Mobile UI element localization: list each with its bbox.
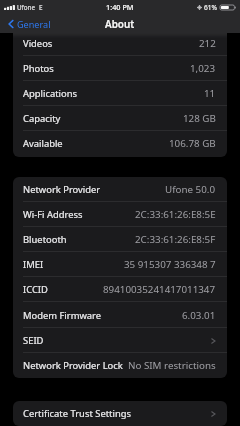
staticText: About bbox=[105, 17, 135, 30]
staticText: E bbox=[39, 3, 43, 12]
button[interactable]: Bluetooth bbox=[13, 227, 227, 252]
button[interactable]: Available bbox=[13, 131, 227, 156]
staticText: 6.03.01 bbox=[182, 309, 216, 322]
button[interactable]: Back to General bbox=[8, 14, 51, 33]
button[interactable]: IMEI bbox=[13, 252, 227, 277]
button[interactable]: Videos bbox=[13, 31, 227, 56]
staticText: 61% bbox=[204, 3, 218, 12]
staticText: 89410035241417011347 bbox=[103, 283, 216, 296]
staticText: 2C:33:61:26:E8:5E bbox=[135, 208, 216, 221]
staticText: Bluetooth bbox=[23, 233, 67, 246]
staticText: No SIM restrictions bbox=[128, 359, 216, 372]
staticText: 212 bbox=[199, 37, 216, 50]
staticText: Videos bbox=[23, 37, 53, 50]
button[interactable]: Applications bbox=[13, 81, 227, 106]
staticText: Network Provider bbox=[23, 183, 101, 196]
staticText: Applications bbox=[23, 87, 77, 100]
staticText: 11 bbox=[204, 87, 216, 100]
button[interactable]: Capacity bbox=[13, 106, 227, 131]
button[interactable]: Network Provider Lock bbox=[13, 353, 227, 378]
staticText: General bbox=[17, 18, 51, 30]
staticText: Ufone bbox=[17, 3, 36, 12]
staticText: Wi-Fi Address bbox=[23, 208, 83, 221]
staticText: Capacity bbox=[23, 112, 61, 125]
button[interactable]: Certificate Trust Settings bbox=[13, 401, 227, 426]
staticText: 1,023 bbox=[190, 62, 216, 75]
staticText: SEID bbox=[23, 334, 44, 347]
staticText: Available bbox=[23, 137, 63, 150]
staticText: Modem Firmware bbox=[23, 309, 102, 322]
staticText: 106.78 GB bbox=[169, 137, 216, 150]
staticText: ICCID bbox=[23, 283, 48, 296]
button[interactable]: Network Provider bbox=[13, 177, 227, 202]
button[interactable]: SEID bbox=[13, 328, 227, 353]
staticText: IMEI bbox=[23, 258, 44, 271]
button[interactable]: Modem Firmware bbox=[13, 303, 227, 328]
staticText: 35 915307 336348 7 bbox=[124, 258, 216, 271]
staticText: Ufone 50.0 bbox=[165, 183, 216, 196]
staticText: 1:40 PM bbox=[106, 2, 134, 12]
staticText: Photos bbox=[23, 62, 54, 75]
button[interactable]: ICCID bbox=[13, 277, 227, 302]
staticText: Certificate Trust Settings bbox=[23, 407, 131, 420]
button[interactable]: Wi-Fi Address bbox=[13, 202, 227, 227]
button[interactable]: Photos bbox=[13, 56, 227, 81]
staticText: Network Provider Lock bbox=[23, 359, 123, 372]
staticText: 128 GB bbox=[183, 112, 216, 125]
staticText: 2C:33:61:26:E8:5F bbox=[135, 233, 216, 246]
